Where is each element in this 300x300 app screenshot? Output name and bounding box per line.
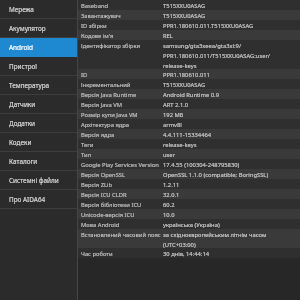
staticText: Unicode-версія ICU <box>81 211 163 219</box>
staticText: Інкрементальний <box>81 81 163 89</box>
button[interactable]: Датчики <box>0 95 77 114</box>
staticText: Baseband <box>81 2 163 10</box>
staticText: Мова Android <box>81 221 163 229</box>
button[interactable]: Baseband <box>78 0 300 10</box>
button[interactable]: Інкрементальний <box>78 79 300 89</box>
staticText: Версія OpenSSL <box>81 171 163 179</box>
staticText: Версія бібліотеки ICU <box>81 201 163 209</box>
button[interactable]: Мова Android <box>78 219 300 229</box>
staticText: 10.0 <box>163 211 175 219</box>
staticText: REL <box>163 32 173 40</box>
button[interactable]: Встановлений часовий пояс <box>78 229 300 248</box>
button[interactable]: Системні файли <box>0 171 77 190</box>
staticText: samsung/gta3xeea/gta3xl:9/ PPR1.180610.0… <box>163 42 270 69</box>
button[interactable]: Версія бібліотеки ICU <box>78 199 300 209</box>
button[interactable]: Про AIDA64 <box>0 190 77 209</box>
staticText: ART 2.1.0 <box>163 101 189 109</box>
staticText: Android <box>9 43 33 52</box>
staticText: Про AIDA64 <box>9 195 46 204</box>
staticText: Каталоги <box>9 157 38 166</box>
staticText: Google Play Services Version <box>81 161 163 169</box>
staticText: Кодеки <box>9 138 32 147</box>
button[interactable]: Пристрої <box>0 57 77 76</box>
staticText: Мережа <box>9 5 34 14</box>
button[interactable]: Ідентифікатор збірки <box>78 40 300 69</box>
button[interactable]: Версія OpenSSL <box>78 169 300 179</box>
button[interactable]: Акумулятор <box>0 19 77 38</box>
button[interactable]: Google Play Services Version <box>78 159 300 169</box>
staticText: Встановлений часовий пояс <box>81 231 163 239</box>
staticText: 30 днів, 14:44:14 <box>163 250 210 258</box>
staticText: Android Runtime 0.9 <box>163 91 219 99</box>
staticText: Версія ZLib <box>81 181 163 189</box>
staticText: Додатки <box>9 119 36 128</box>
staticText: Кодове ім'я <box>81 32 163 40</box>
staticText: 17.4.55 (100304-248795830) <box>163 161 240 169</box>
staticText: 32.0.1 <box>163 191 180 199</box>
staticText: Архітектура ядра <box>81 121 163 129</box>
staticText: Температура <box>9 81 50 90</box>
staticText: 4.4.111-15334464 <box>163 131 212 139</box>
staticText: PPR1.180610.011.T515XXU0ASAG <box>163 22 254 30</box>
staticText: Розмір купи Java VM <box>81 111 163 119</box>
button[interactable]: Температура <box>0 76 77 95</box>
staticText: Пристрої <box>9 62 37 71</box>
staticText: release-keys <box>163 141 197 149</box>
staticText: Версія ICU CLDR <box>81 191 163 199</box>
staticText: user <box>163 151 176 159</box>
button[interactable]: Теги <box>78 139 300 149</box>
staticText: Теги <box>81 141 163 149</box>
staticText: T515XXU0ASAG <box>163 81 206 89</box>
staticText: Версія Java VM <box>81 101 163 109</box>
staticText: Акумулятор <box>9 24 46 33</box>
button[interactable]: Версія ядра <box>78 129 300 139</box>
staticText: за східноєвропейським літнім часом (UTC+… <box>163 231 267 248</box>
staticText: Версія Java Runtime <box>81 91 163 99</box>
staticText: Датчики <box>9 100 36 109</box>
staticText: Версія ядра <box>81 131 163 139</box>
button[interactable]: Тип <box>78 149 300 159</box>
staticText: Завантажувач <box>81 12 163 20</box>
staticText: українська (Україна) <box>163 221 220 229</box>
button[interactable]: Мережа <box>0 0 77 19</box>
staticText: Ідентифікатор збірки <box>81 42 163 50</box>
button[interactable]: Android <box>0 38 77 57</box>
button[interactable]: Архітектура ядра <box>78 119 300 129</box>
staticText: Тип <box>81 151 163 159</box>
button[interactable]: Версія ZLib <box>78 179 300 189</box>
staticText: 60.2 <box>163 201 175 209</box>
button[interactable]: Версія Java VM <box>78 99 300 109</box>
staticText: T515XXU0ASAG <box>163 12 206 20</box>
staticText: ID <box>81 71 163 79</box>
staticText: 192 MБ <box>163 111 184 119</box>
button[interactable]: Кодове ім'я <box>78 30 300 40</box>
staticText: T515XXU0ASAG <box>163 2 206 10</box>
staticText: OpenSSL 1.1.0 (compatible; BoringSSL) <box>163 171 269 179</box>
button[interactable]: Версія ICU CLDR <box>78 189 300 199</box>
staticText: Час роботи <box>81 250 163 258</box>
staticText: ID збірки <box>81 22 163 30</box>
staticText: 1.2.11 <box>163 181 180 189</box>
button[interactable]: ID збірки <box>78 20 300 30</box>
button[interactable]: Версія Java Runtime <box>78 89 300 99</box>
button[interactable]: Каталоги <box>0 152 77 171</box>
staticText: Системні файли <box>9 176 59 185</box>
staticText: PPR1.180610.011 <box>163 71 210 79</box>
button[interactable]: Час роботи <box>78 248 300 258</box>
staticText: armv8l <box>163 121 182 129</box>
button[interactable]: ID <box>78 69 300 79</box>
button[interactable]: Завантажувач <box>78 10 300 20</box>
button[interactable]: Додатки <box>0 114 77 133</box>
button[interactable]: Unicode-версія ICU <box>78 209 300 219</box>
button[interactable]: Кодеки <box>0 133 77 152</box>
button[interactable]: Розмір купи Java VM <box>78 109 300 119</box>
